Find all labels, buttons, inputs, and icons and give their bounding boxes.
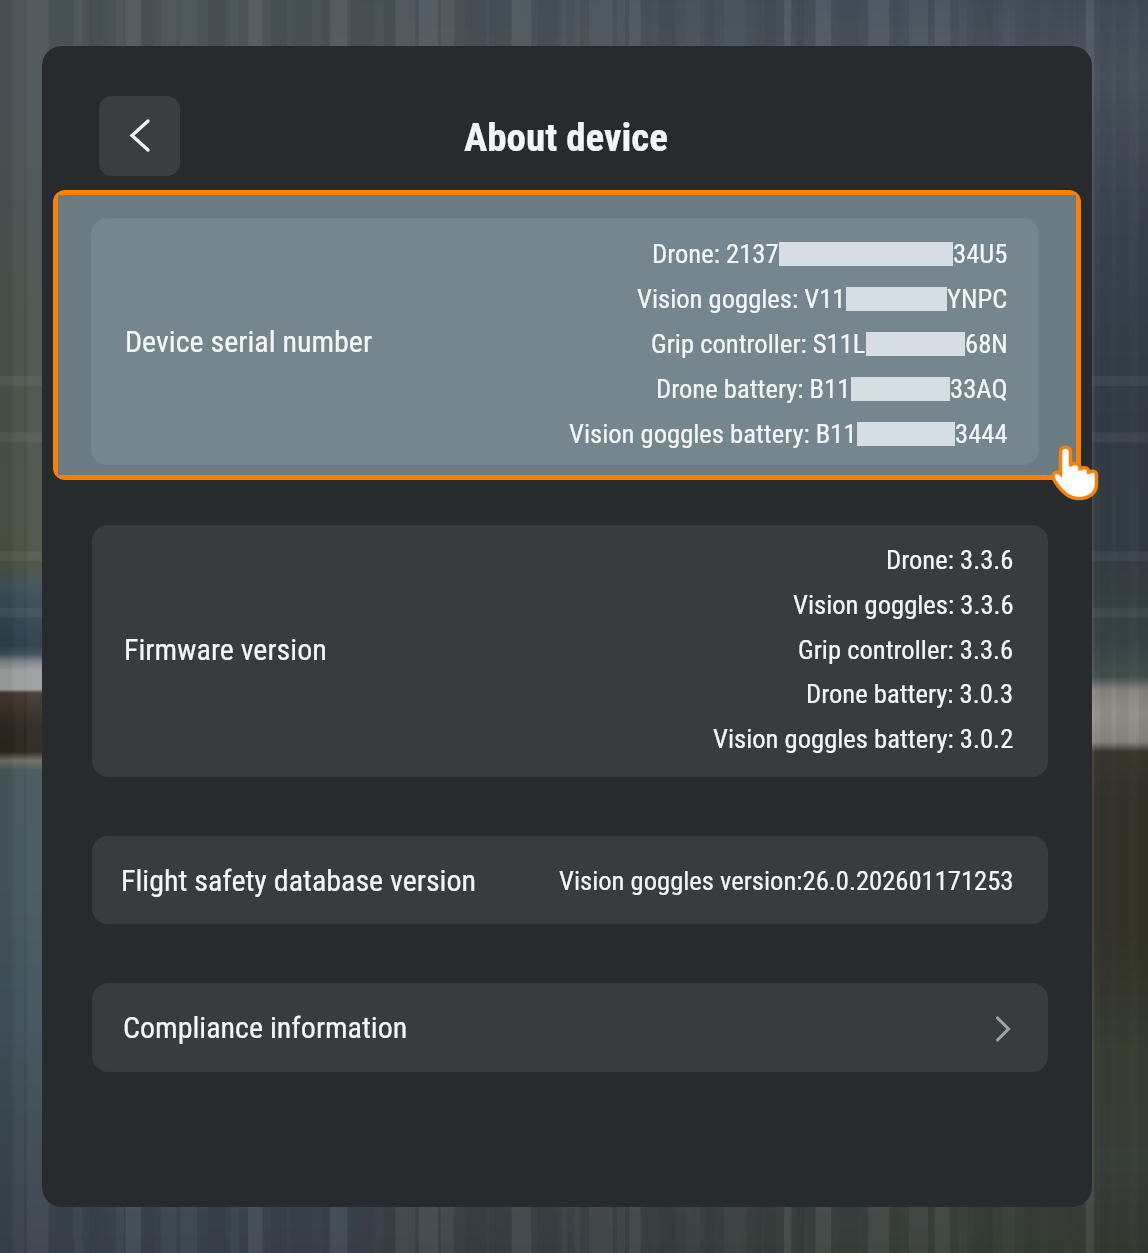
staticText: Compliance information xyxy=(123,1010,408,1045)
staticText: About device xyxy=(464,115,668,161)
staticText: 3444 xyxy=(955,418,1008,449)
staticText: 33AQ xyxy=(950,373,1008,404)
staticText: Vision goggles version:26.0.202601171253 xyxy=(559,865,1014,896)
button[interactable]: Back xyxy=(99,96,180,176)
button[interactable]: Flight safety database version xyxy=(92,836,1048,924)
staticText: Drone battery: 3.0.3 xyxy=(806,678,1014,709)
staticText: YNPC xyxy=(947,283,1008,314)
staticText: Grip controller: 3.3.6 xyxy=(798,634,1014,665)
staticText: Vision goggles battery: B11 xyxy=(569,418,857,449)
staticText: Vision goggles battery: 3.0.2 xyxy=(713,723,1014,754)
button[interactable]: Compliance information xyxy=(92,983,1048,1072)
staticText: Device serial number xyxy=(125,324,373,359)
staticText: Vision goggles: V11 xyxy=(637,283,846,314)
staticText: Flight safety database version xyxy=(121,863,477,898)
button[interactable]: Device serial number xyxy=(58,195,1076,475)
staticText: Drone: 3.3.6 xyxy=(886,544,1014,575)
button[interactable]: Firmware version xyxy=(92,525,1048,777)
staticText: Firmware version xyxy=(124,632,327,667)
staticText: Grip controller: S11L xyxy=(651,328,866,359)
staticText: 34U5 xyxy=(953,238,1008,269)
staticText: Drone battery: B11 xyxy=(656,373,851,404)
staticText: Drone: 2137 xyxy=(652,238,779,269)
staticText: Vision goggles: 3.3.6 xyxy=(793,589,1014,620)
staticText: 68N xyxy=(965,328,1008,359)
